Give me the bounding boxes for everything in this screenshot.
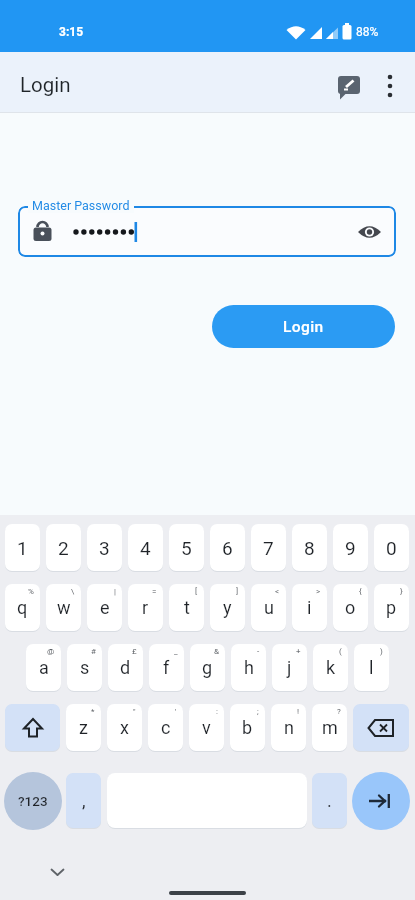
- staticText: n: [284, 717, 294, 738]
- button[interactable]: x: [107, 704, 142, 751]
- button[interactable]: f: [149, 644, 184, 691]
- staticText: 88%: [356, 25, 379, 39]
- staticText: (: [339, 647, 342, 656]
- staticText: p: [386, 597, 397, 618]
- staticText: k: [326, 657, 336, 678]
- button[interactable]: ?123: [4, 772, 62, 830]
- staticText: c: [161, 717, 171, 738]
- button[interactable]: 9: [333, 524, 368, 571]
- staticText: w: [57, 597, 71, 618]
- button[interactable]: h: [231, 644, 266, 691]
- button[interactable]: p: [374, 584, 409, 631]
- button[interactable]: u: [251, 584, 286, 631]
- staticText: Login: [283, 318, 324, 336]
- button[interactable]: [18, 206, 396, 257]
- button[interactable]: z: [66, 704, 101, 751]
- button[interactable]: [353, 704, 409, 751]
- staticText: 7: [263, 537, 274, 559]
- button[interactable]: [372, 68, 408, 106]
- button[interactable]: Login: [212, 305, 395, 348]
- staticText: x: [120, 717, 129, 738]
- button[interactable]: g: [190, 644, 225, 691]
- button[interactable]: s: [67, 644, 102, 691]
- staticText: v: [202, 717, 211, 738]
- staticText: i: [307, 597, 312, 618]
- staticText: £: [132, 647, 137, 656]
- staticText: :: [216, 707, 218, 716]
- staticText: g: [202, 657, 213, 678]
- staticText: s: [80, 657, 90, 678]
- button[interactable]: 1: [5, 524, 40, 571]
- button[interactable]: k: [313, 644, 348, 691]
- button[interactable]: a: [26, 644, 61, 691]
- staticText: e: [100, 597, 110, 618]
- button[interactable]: c: [148, 704, 183, 751]
- button[interactable]: ,: [66, 773, 101, 828]
- staticText: 0: [386, 537, 397, 559]
- staticText: 3:15: [59, 25, 84, 39]
- staticText: 1: [17, 537, 28, 559]
- staticText: &: [214, 647, 219, 656]
- button[interactable]: .: [312, 773, 347, 828]
- staticText: b: [242, 717, 253, 738]
- staticText: \: [71, 587, 75, 596]
- button[interactable]: 8: [292, 524, 327, 571]
- staticText: ": [133, 707, 136, 716]
- button[interactable]: n: [271, 704, 306, 751]
- button[interactable]: v: [189, 704, 224, 751]
- staticText: 4: [140, 537, 151, 559]
- button[interactable]: t: [169, 584, 204, 631]
- staticText: q: [17, 597, 28, 618]
- button[interactable]: [330, 68, 368, 106]
- staticText: }: [400, 587, 403, 596]
- button[interactable]: i: [292, 584, 327, 631]
- staticText: <: [275, 587, 280, 596]
- button[interactable]: d: [108, 644, 143, 691]
- staticText: z: [79, 717, 88, 738]
- button[interactable]: e: [87, 584, 122, 631]
- staticText: !: [297, 707, 300, 716]
- staticText: t: [184, 597, 190, 618]
- staticText: d: [120, 657, 131, 678]
- staticText: 3: [99, 537, 110, 559]
- staticText: =: [152, 587, 157, 596]
- button[interactable]: 7: [251, 524, 286, 571]
- staticText: Login: [20, 73, 71, 97]
- button[interactable]: b: [230, 704, 265, 751]
- button[interactable]: [5, 704, 60, 751]
- staticText: ': [175, 707, 177, 716]
- button[interactable]: o: [333, 584, 368, 631]
- button[interactable]: r: [128, 584, 163, 631]
- staticText: 6: [222, 537, 233, 559]
- button[interactable]: 5: [169, 524, 204, 571]
- staticText: |: [114, 587, 116, 596]
- staticText: 2: [58, 537, 69, 559]
- staticText: u: [264, 597, 274, 618]
- button[interactable]: 3: [87, 524, 122, 571]
- staticText: 8: [304, 537, 315, 559]
- staticText: .: [327, 790, 332, 811]
- staticText: ): [380, 647, 383, 656]
- button[interactable]: y: [210, 584, 245, 631]
- button[interactable]: q: [5, 584, 40, 631]
- button[interactable]: m: [312, 704, 347, 751]
- staticText: 9: [345, 537, 356, 559]
- button[interactable]: 0: [374, 524, 409, 571]
- staticText: ?: [337, 707, 341, 716]
- button[interactable]: 2: [46, 524, 81, 571]
- button[interactable]: [43, 858, 71, 886]
- staticText: m: [322, 717, 338, 738]
- button[interactable]: 4: [128, 524, 163, 571]
- staticText: {: [359, 587, 362, 596]
- button[interactable]: 6: [210, 524, 245, 571]
- button[interactable]: l: [354, 644, 389, 691]
- button[interactable]: [354, 217, 384, 247]
- staticText: o: [345, 597, 356, 618]
- staticText: h: [244, 657, 254, 678]
- staticText: *: [91, 707, 95, 716]
- staticText: #: [91, 647, 96, 656]
- button[interactable]: w: [46, 584, 81, 631]
- button[interactable]: [352, 772, 410, 830]
- button[interactable]: j: [272, 644, 307, 691]
